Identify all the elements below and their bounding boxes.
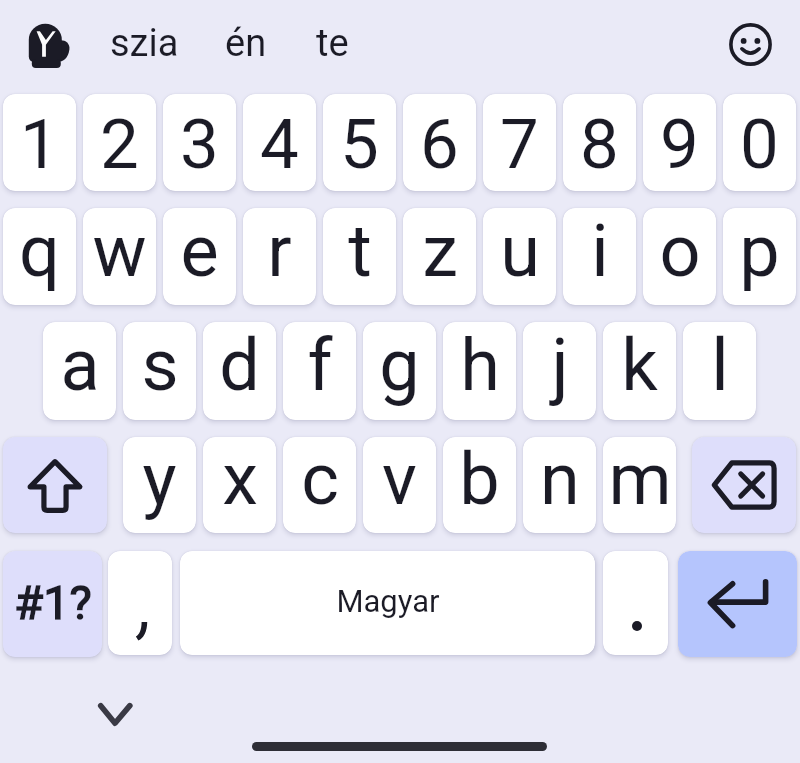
button[interactable]: r (243, 208, 316, 305)
staticText: w (92, 209, 147, 293)
button[interactable]: t (323, 208, 396, 305)
staticText: h (460, 323, 500, 407)
staticText: e (180, 209, 219, 293)
staticText: d (219, 323, 260, 407)
staticText: f (307, 323, 333, 407)
staticText: l (711, 323, 729, 407)
button[interactable]: p (723, 208, 796, 305)
staticText: x (222, 437, 258, 521)
button[interactable]: #1? (3, 551, 102, 657)
button[interactable]: Shift (3, 437, 107, 533)
button[interactable]: a (43, 322, 116, 420)
staticText: Magyar (336, 583, 440, 619)
button[interactable]: z (403, 208, 476, 305)
button[interactable]: m (603, 437, 676, 533)
button[interactable]: w (83, 208, 156, 305)
button[interactable]: 9 (643, 94, 716, 191)
staticText: m (608, 437, 672, 521)
button[interactable]: j (523, 322, 596, 420)
button[interactable]: i (563, 208, 636, 305)
staticText: c (301, 437, 339, 521)
button[interactable]: d (203, 322, 276, 420)
staticText: z (422, 209, 458, 293)
button[interactable]: h (443, 322, 516, 420)
staticText: 9 (660, 104, 699, 185)
staticText: #1? (14, 575, 92, 630)
staticText: 7 (500, 104, 539, 185)
button[interactable]: 5 (323, 94, 396, 191)
button[interactable]: x (203, 437, 276, 533)
button[interactable]: l (683, 322, 756, 420)
button[interactable]: Enter (678, 551, 797, 657)
staticText: te (316, 21, 349, 66)
button[interactable]: e (163, 208, 236, 305)
staticText: a (60, 323, 100, 407)
staticText: szia (110, 21, 179, 66)
staticText: i (591, 209, 609, 293)
button[interactable]: Comma (108, 551, 172, 655)
staticText: én (225, 21, 267, 66)
button[interactable]: Magyar (180, 551, 595, 655)
button[interactable]: 4 (243, 94, 316, 191)
button[interactable]: Backspace (692, 437, 796, 533)
staticText: u (500, 209, 540, 293)
staticText: 6 (420, 104, 459, 185)
staticText: 0 (740, 104, 779, 185)
staticText: b (459, 437, 500, 521)
staticText: 8 (580, 104, 619, 185)
staticText: r (267, 209, 292, 293)
staticText: 4 (260, 104, 299, 185)
button[interactable]: s (123, 322, 196, 420)
button[interactable]: c (283, 437, 356, 533)
button[interactable]: Yandex keyboard settings (26, 22, 70, 69)
staticText: 5 (340, 104, 379, 185)
button[interactable]: g (363, 322, 436, 420)
button[interactable]: Period (603, 551, 668, 655)
button[interactable]: b (443, 437, 516, 533)
staticText: o (659, 209, 701, 293)
button[interactable]: o (643, 208, 716, 305)
button[interactable]: 3 (163, 94, 236, 191)
staticText: y (142, 437, 177, 521)
button[interactable]: k (603, 322, 676, 420)
button[interactable]: Emoji (726, 20, 775, 69)
staticText: n (540, 437, 580, 521)
button[interactable]: én (207, 8, 307, 78)
staticText: 2 (100, 104, 139, 185)
button[interactable]: 8 (563, 94, 636, 191)
staticText: t (348, 209, 372, 293)
button[interactable]: n (523, 437, 596, 533)
staticText: v (382, 437, 417, 521)
button[interactable]: u (483, 208, 556, 305)
button[interactable]: szia (92, 8, 192, 78)
staticText: j (551, 323, 569, 407)
button[interactable]: 2 (83, 94, 156, 191)
button[interactable]: 6 (403, 94, 476, 191)
staticText: s (141, 323, 179, 407)
button[interactable]: y (123, 437, 196, 533)
button[interactable]: 0 (723, 94, 796, 191)
staticText: 3 (180, 104, 219, 185)
staticText: g (379, 323, 420, 407)
staticText: p (739, 209, 780, 293)
button[interactable]: q (3, 208, 76, 305)
staticText: 1 (20, 104, 59, 185)
button[interactable]: f (283, 322, 356, 420)
button[interactable]: te (298, 8, 398, 78)
button[interactable]: v (363, 437, 436, 533)
staticText: q (19, 209, 60, 293)
button[interactable]: 7 (483, 94, 556, 191)
button[interactable]: Hide keyboard (87, 686, 143, 734)
staticText: k (621, 323, 658, 407)
button[interactable]: 1 (3, 94, 76, 191)
